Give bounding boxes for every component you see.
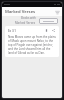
- button[interactable]: Bookmark: [44, 28, 49, 33]
- staticText: Ex 3:1: [8, 29, 17, 33]
- button[interactable]: Ex 3:1: [5, 26, 59, 57]
- button[interactable]: [39, 18, 58, 24]
- staticText: Marked Verses: [15, 21, 36, 25]
- staticText: Now Moses came up from the plains of Moa…: [8, 35, 56, 55]
- staticText: Marked Verses: [5, 9, 36, 15]
- button[interactable]: More options: [53, 8, 61, 16]
- button[interactable]: Share: [51, 28, 56, 33]
- staticText: Books with: [21, 16, 36, 20]
